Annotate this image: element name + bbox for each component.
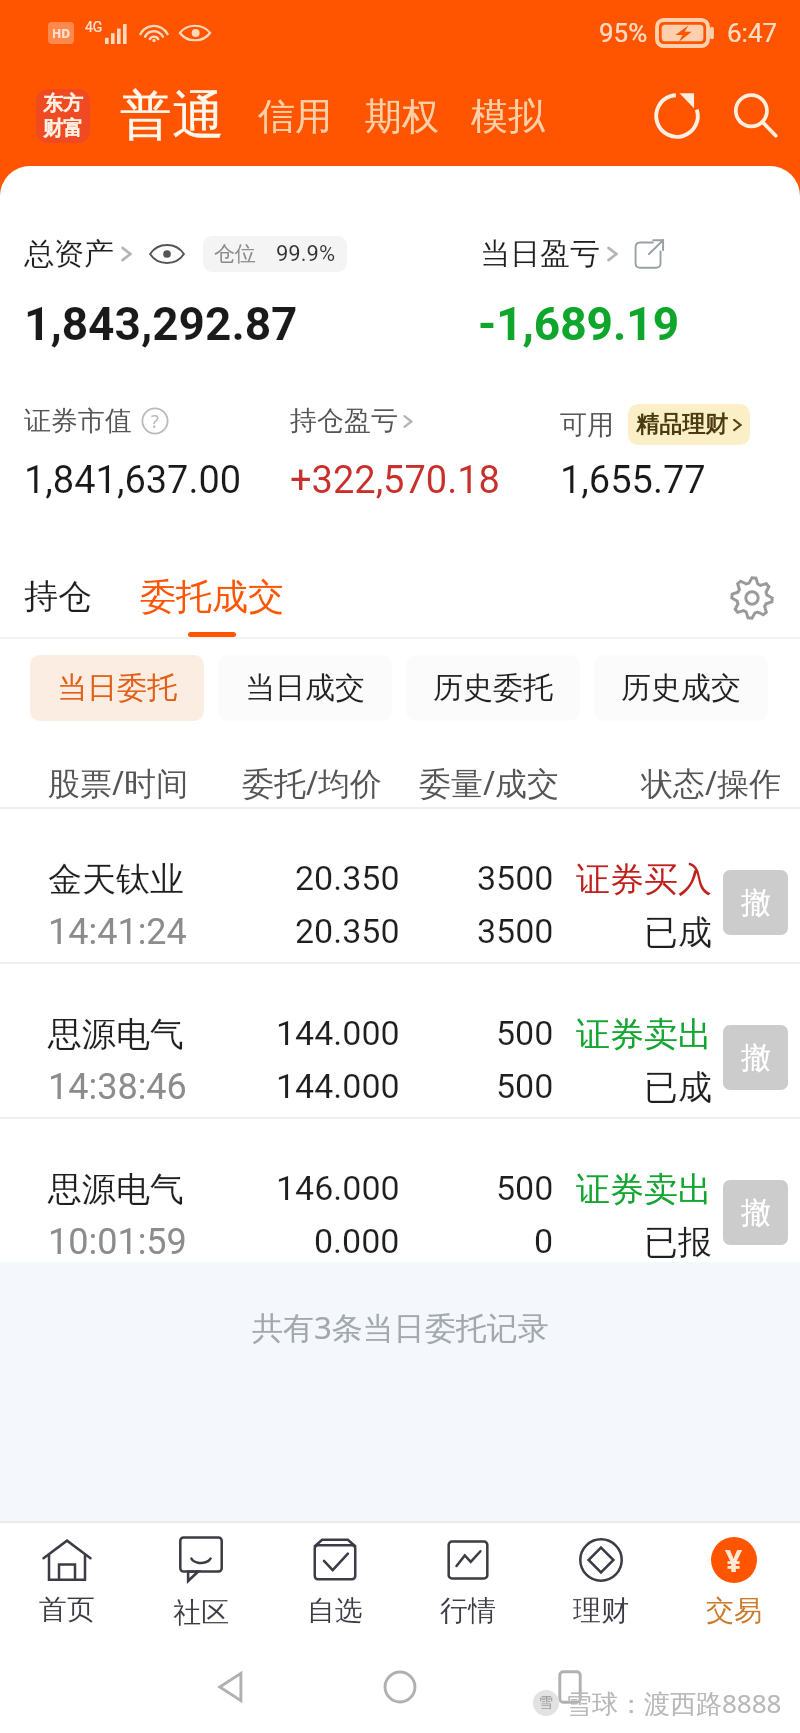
button[interactable]: 持仓盈亏 (290, 404, 398, 438)
button[interactable]: Home (370, 1657, 430, 1717)
staticText: 交易 (706, 1593, 762, 1628)
staticText: 3500 (477, 911, 554, 951)
staticText: 社区 (173, 1595, 229, 1630)
staticText: 信用 (258, 93, 332, 140)
staticText: 20.350 (295, 911, 400, 951)
staticText: 95% (599, 18, 648, 48)
staticText: 理财 (573, 1593, 629, 1628)
button[interactable]: Open detail (633, 238, 665, 270)
staticText: 证券卖出 (576, 1168, 712, 1211)
staticText: 撤 (741, 1039, 771, 1077)
staticText: 14:38:46 (48, 1066, 187, 1108)
staticText: 4G (85, 19, 103, 35)
staticText: 144.000 (276, 1066, 400, 1106)
button[interactable]: 思源电气 (0, 964, 800, 1119)
button[interactable]: Recents (540, 1657, 600, 1717)
staticText: 委量/成交 (419, 761, 559, 805)
button[interactable]: 总资产 (24, 235, 114, 273)
staticText: 委托成交 (140, 574, 284, 619)
button[interactable]: 撤 (723, 1025, 788, 1090)
staticText: 仓位 (214, 241, 256, 267)
staticText: 雪球：渡西路8888 (566, 1685, 782, 1721)
staticText: 500 (496, 1013, 554, 1053)
staticText: 已报 (644, 1221, 712, 1262)
staticText: 雪 (539, 1694, 553, 1712)
staticText: 思源电气 (48, 1013, 184, 1056)
staticText: 金天钛业 (48, 858, 184, 901)
button[interactable]: 首页 (0, 1538, 134, 1627)
staticText: 1,843,292.87 (24, 297, 298, 351)
staticText: 1,655.77 (560, 458, 706, 503)
staticText: 0 (534, 1221, 554, 1261)
staticText: 当日委托 (57, 669, 177, 707)
button[interactable]: 当日盈亏 (480, 235, 600, 273)
staticText: 东方 (43, 91, 83, 116)
staticText: 撤 (741, 884, 771, 922)
staticText: 历史成交 (621, 669, 741, 707)
staticText: 500 (496, 1168, 554, 1208)
staticText: 股票/时间 (48, 761, 188, 805)
button[interactable]: 委托成交 (140, 574, 284, 637)
button[interactable]: East Money logo (36, 89, 90, 143)
staticText: ? (151, 409, 159, 434)
staticText: 99.9% (276, 241, 336, 267)
staticText: 3500 (477, 858, 554, 898)
staticText: 精品理财 (636, 410, 728, 439)
button[interactable]: 行情 (401, 1537, 534, 1628)
button[interactable]: Settings (724, 570, 780, 626)
button[interactable]: 模拟 (471, 93, 545, 140)
staticText: 当日盈亏 (480, 235, 600, 273)
staticText: 期权 (365, 93, 439, 140)
staticText: 当日成交 (245, 669, 365, 707)
button[interactable]: 持仓 (24, 574, 92, 617)
button[interactable]: 思源电气 (0, 1119, 800, 1262)
staticText: 行情 (440, 1593, 496, 1628)
button[interactable]: 撤 (723, 1180, 788, 1245)
staticText: 共有3条当日委托记录 (252, 1306, 549, 1348)
button[interactable]: 当日委托 (30, 655, 204, 721)
staticText: 证券卖出 (576, 1013, 712, 1056)
staticText: +322,570.18 (290, 458, 500, 503)
staticText: 历史委托 (433, 669, 553, 707)
button[interactable]: Search (724, 85, 786, 147)
staticText: HD (52, 25, 70, 41)
staticText: 模拟 (471, 93, 545, 140)
staticText: 已成 (644, 911, 712, 954)
staticText: 10:01:59 (48, 1221, 187, 1262)
staticText: 144.000 (276, 1013, 400, 1053)
staticText: 0.000 (314, 1221, 400, 1261)
staticText: 持仓盈亏 (290, 404, 398, 438)
staticText: 1,841,637.00 (24, 458, 242, 503)
staticText: 思源电气 (48, 1168, 184, 1211)
button[interactable]: 历史委托 (406, 655, 580, 721)
button[interactable]: Back (200, 1657, 260, 1717)
button[interactable]: 理财 (534, 1537, 667, 1628)
button[interactable]: 信用 (258, 93, 332, 140)
staticText: 146.000 (276, 1168, 400, 1208)
staticText: 状态/操作 (641, 761, 781, 805)
button[interactable]: 当日成交 (218, 655, 392, 721)
staticText: 持仓 (24, 575, 92, 618)
button[interactable]: 普通 (120, 83, 224, 149)
button[interactable]: Refresh (646, 85, 708, 147)
button[interactable]: 社区 (134, 1535, 268, 1630)
button[interactable]: Hide balance (149, 242, 185, 266)
staticText: 证券买入 (576, 858, 712, 901)
staticText: 20.350 (295, 858, 400, 898)
staticText: 撤 (741, 1194, 771, 1232)
button[interactable]: 仓位 (203, 236, 347, 272)
button[interactable]: 撤 (723, 870, 788, 935)
button[interactable]: 金天钛业 (0, 809, 800, 964)
staticText: 委托/均价 (242, 761, 382, 805)
staticText: 总资产 (24, 235, 114, 273)
button[interactable]: ¥ (667, 1537, 800, 1628)
staticText: 财富 (43, 116, 83, 141)
staticText: 证券市值 (24, 404, 132, 438)
staticText: 自选 (307, 1593, 363, 1628)
button[interactable]: 历史成交 (594, 655, 768, 721)
staticText: 首页 (39, 1592, 95, 1627)
button[interactable]: 自选 (268, 1537, 401, 1628)
button[interactable]: 精品理财 (628, 404, 750, 445)
button[interactable]: 期权 (365, 93, 439, 140)
staticText: 14:41:24 (48, 911, 187, 953)
